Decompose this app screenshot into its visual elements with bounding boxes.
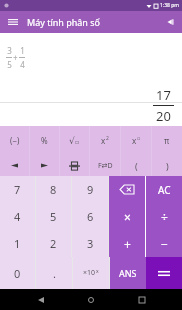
button[interactable]: Back <box>31 290 51 310</box>
button[interactable]: √ <box>60 126 89 155</box>
staticText: 0 <box>14 266 21 281</box>
staticText: 1:38 pm <box>160 2 179 9</box>
button[interactable]: ×10 <box>73 257 109 289</box>
staticText: 20 <box>156 107 171 125</box>
staticText: 17 <box>156 86 171 104</box>
button[interactable]: ÷ <box>146 203 182 230</box>
staticText: x <box>101 135 106 146</box>
staticText: 5 <box>7 59 12 70</box>
button[interactable]: F⇄D <box>90 155 120 176</box>
staticText: 1 <box>14 236 21 251</box>
staticText: ▫ <box>137 135 141 141</box>
staticText: F⇄D <box>98 161 113 171</box>
staticText: + <box>124 236 131 252</box>
button[interactable]: . <box>36 257 72 289</box>
button[interactable]: (−) <box>0 126 29 155</box>
staticText: 4 <box>14 209 21 224</box>
staticText: 2 <box>50 236 57 251</box>
staticText: 3 <box>7 45 12 56</box>
staticText: 8 <box>50 182 57 197</box>
staticText: 6 <box>87 209 94 224</box>
staticText: . <box>53 266 56 281</box>
staticText: ANS <box>119 267 137 279</box>
staticText: + <box>13 52 18 63</box>
button[interactable]: 0 <box>0 257 35 289</box>
staticText: 2 <box>106 135 109 142</box>
button[interactable]: Fraction <box>60 155 89 176</box>
button[interactable]: Menu <box>5 14 21 30</box>
button[interactable]: ) <box>152 155 182 176</box>
staticText: π <box>164 135 170 146</box>
button[interactable]: ( <box>121 155 151 176</box>
staticText: ÷ <box>161 209 168 225</box>
button[interactable]: 9 <box>72 176 108 203</box>
button[interactable]: ANS <box>110 257 146 289</box>
button[interactable]: 1 <box>0 230 35 257</box>
button[interactable]: Home <box>81 290 101 310</box>
staticText: 9 <box>87 182 94 197</box>
button[interactable]: 7 <box>0 176 35 203</box>
staticText: 7 <box>14 182 21 197</box>
button[interactable]: Left <box>0 155 29 176</box>
button[interactable]: AC <box>146 176 182 203</box>
staticText: √ <box>69 136 75 146</box>
button[interactable]: 8 <box>36 176 71 203</box>
staticText: % <box>41 135 48 146</box>
button[interactable]: + <box>109 230 145 257</box>
button[interactable]: 5 <box>36 203 71 230</box>
button[interactable]: π <box>152 126 182 155</box>
staticText: 3 <box>87 236 94 251</box>
button[interactable]: Backspace <box>109 176 145 203</box>
staticText: ( <box>135 160 138 172</box>
button[interactable]: Right <box>30 155 59 176</box>
button[interactable]: 2 <box>36 230 71 257</box>
staticText: Máy tính phân số <box>27 16 100 28</box>
button[interactable]: Back <box>163 15 177 29</box>
staticText: x <box>132 135 137 146</box>
button[interactable]: × <box>109 203 145 230</box>
staticText: 5 <box>50 209 57 224</box>
button[interactable]: x <box>90 126 120 155</box>
staticText: 1 <box>20 45 25 56</box>
button[interactable]: Equals <box>146 257 182 289</box>
staticText: × <box>124 209 131 225</box>
staticText: x <box>96 268 99 275</box>
staticText: AC <box>158 183 171 197</box>
staticText: ×10 <box>83 268 96 278</box>
staticText: − <box>161 236 168 252</box>
staticText: ) <box>166 160 169 172</box>
staticText: 4 <box>20 59 25 70</box>
button[interactable]: 6 <box>72 203 108 230</box>
button[interactable]: x <box>121 126 151 155</box>
button[interactable]: 3 <box>72 230 108 257</box>
button[interactable]: − <box>146 230 182 257</box>
button[interactable]: 4 <box>0 203 35 230</box>
button[interactable]: % <box>30 126 59 155</box>
staticText: (−) <box>10 135 20 146</box>
staticText: ▫ <box>75 138 80 145</box>
button[interactable]: Recents <box>132 290 152 310</box>
